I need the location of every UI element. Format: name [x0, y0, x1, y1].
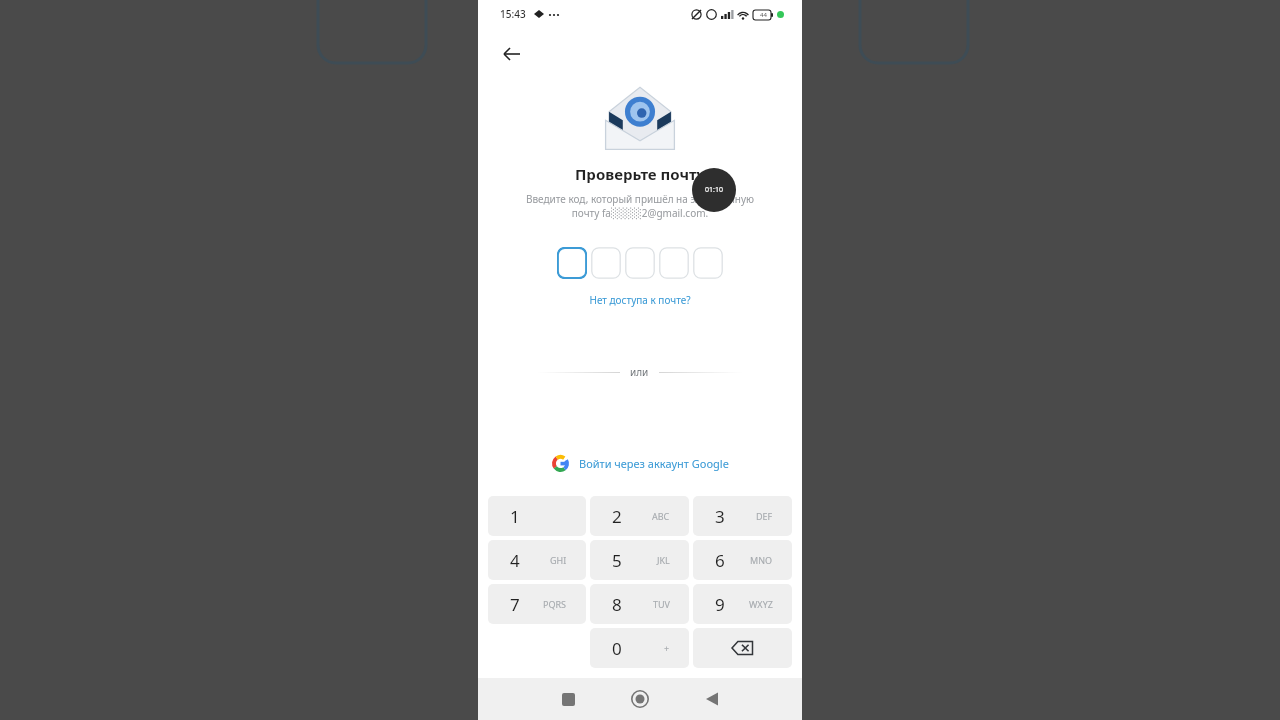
- staticText: WXYZ: [749, 598, 773, 610]
- staticText: +: [664, 642, 670, 654]
- button[interactable]: 9: [693, 584, 792, 624]
- staticText: TUV: [653, 598, 670, 610]
- staticText: 4: [510, 549, 520, 572]
- staticText: Проверьте почту: [478, 164, 802, 184]
- staticText: 6: [715, 549, 725, 572]
- button[interactable]: 4: [488, 540, 586, 580]
- staticText: JKL: [657, 554, 670, 566]
- staticText: Войти через аккаунт Google: [579, 456, 729, 471]
- button[interactable]: Recents: [540, 678, 596, 720]
- staticText: 15:43: [500, 7, 526, 21]
- staticText: или: [630, 365, 649, 379]
- button[interactable]: 0: [590, 628, 689, 668]
- staticText: 9: [715, 593, 725, 616]
- staticText: 3: [715, 505, 725, 528]
- button[interactable]: [557, 247, 587, 279]
- button[interactable]: 3: [693, 496, 792, 536]
- button[interactable]: 2: [590, 496, 689, 536]
- staticText: 1: [510, 505, 520, 528]
- staticText: DEF: [756, 510, 773, 522]
- button[interactable]: [591, 247, 621, 279]
- button[interactable]: Home: [612, 678, 668, 720]
- button[interactable]: Нет доступа к почте?: [478, 293, 802, 307]
- button[interactable]: 01:10: [692, 168, 736, 212]
- button[interactable]: Войти через аккаунт Google: [478, 455, 802, 472]
- staticText: 5: [612, 549, 622, 572]
- staticText: Введите код, который пришёл на электронн…: [498, 192, 782, 220]
- button[interactable]: [659, 247, 689, 279]
- button[interactable]: Back: [684, 678, 740, 720]
- button[interactable]: 6: [693, 540, 792, 580]
- staticText: MNO: [750, 554, 773, 566]
- staticText: 2: [612, 505, 622, 528]
- button[interactable]: Backspace: [693, 628, 792, 668]
- staticText: 44: [760, 11, 767, 19]
- button[interactable]: 5: [590, 540, 689, 580]
- staticText: PQRS: [543, 598, 567, 610]
- button[interactable]: 1: [488, 496, 586, 536]
- button[interactable]: Back: [492, 34, 532, 74]
- button[interactable]: 7: [488, 584, 586, 624]
- button[interactable]: [693, 247, 723, 279]
- staticText: 01:10: [705, 185, 723, 195]
- button[interactable]: 8: [590, 584, 689, 624]
- staticText: 8: [612, 593, 622, 616]
- staticText: 7: [510, 593, 520, 616]
- staticText: 0: [612, 637, 622, 660]
- staticText: GHI: [550, 554, 567, 566]
- button[interactable]: [625, 247, 655, 279]
- staticText: ABC: [652, 510, 670, 522]
